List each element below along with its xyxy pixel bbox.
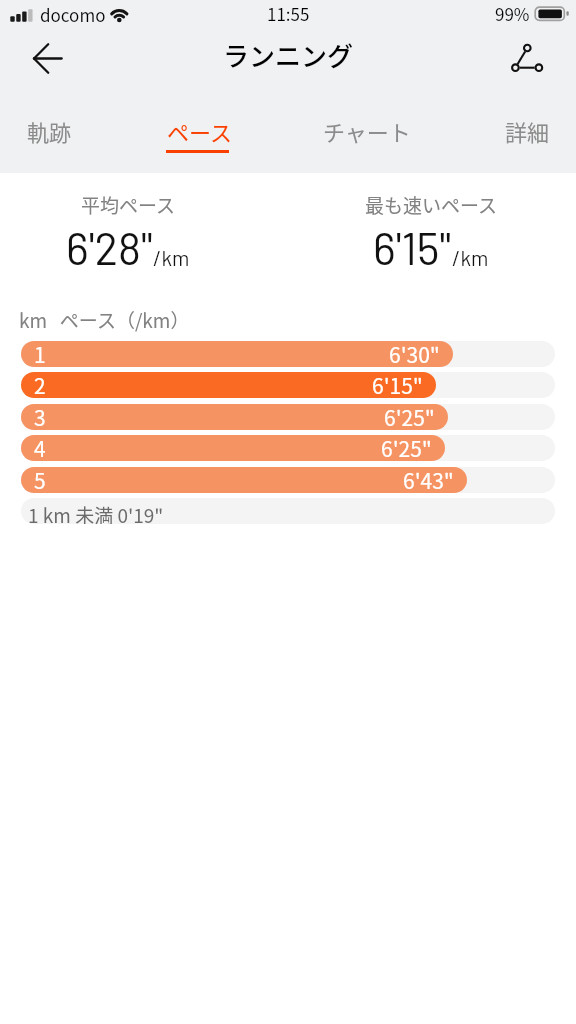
button[interactable]: チャート	[307, 105, 427, 155]
button[interactable]: 軌跡	[0, 105, 109, 155]
staticText: /km	[153, 245, 190, 270]
staticText: 2	[34, 372, 46, 396]
button[interactable]: 2	[21, 372, 555, 398]
staticText: docomo	[40, 2, 106, 24]
button[interactable]: ペース	[139, 105, 259, 155]
button[interactable]: 1 km 未満 0'19"	[21, 498, 555, 524]
staticText: 軌跡	[27, 115, 72, 147]
staticText: ランニング	[223, 36, 354, 74]
staticText: 6'15"	[373, 221, 452, 271]
staticText: 99%	[495, 1, 530, 23]
staticText: 6'28"	[66, 221, 153, 271]
staticText: /km	[452, 245, 489, 270]
staticText: 4	[34, 435, 46, 459]
staticText: 詳細	[505, 115, 550, 147]
staticText: 平均ペース	[81, 191, 176, 219]
button[interactable]: 1	[21, 341, 555, 367]
button[interactable]: 5	[21, 467, 555, 493]
staticText: 5	[34, 467, 46, 491]
staticText: 6'15"	[372, 372, 423, 396]
staticText: 3	[34, 404, 46, 428]
button[interactable]: 3	[21, 404, 555, 430]
button[interactable]: 4	[21, 435, 555, 461]
staticText: 6'25"	[381, 435, 432, 459]
button[interactable]: Share	[500, 34, 556, 84]
button[interactable]: 詳細	[467, 105, 576, 155]
staticText: km ペース（/km）	[19, 306, 190, 334]
staticText: 1 km 未満 0'19"	[28, 501, 164, 524]
staticText: ペース	[167, 115, 232, 147]
staticText: 最も速いペース	[365, 191, 498, 219]
staticText: 1	[34, 341, 46, 365]
staticText: 11:55	[267, 1, 310, 23]
button[interactable]: Back	[20, 34, 76, 84]
staticText: 6'25"	[384, 404, 435, 428]
staticText: 6'43"	[403, 467, 454, 491]
staticText: 6'30"	[389, 341, 440, 365]
staticText: チャート	[323, 115, 411, 147]
